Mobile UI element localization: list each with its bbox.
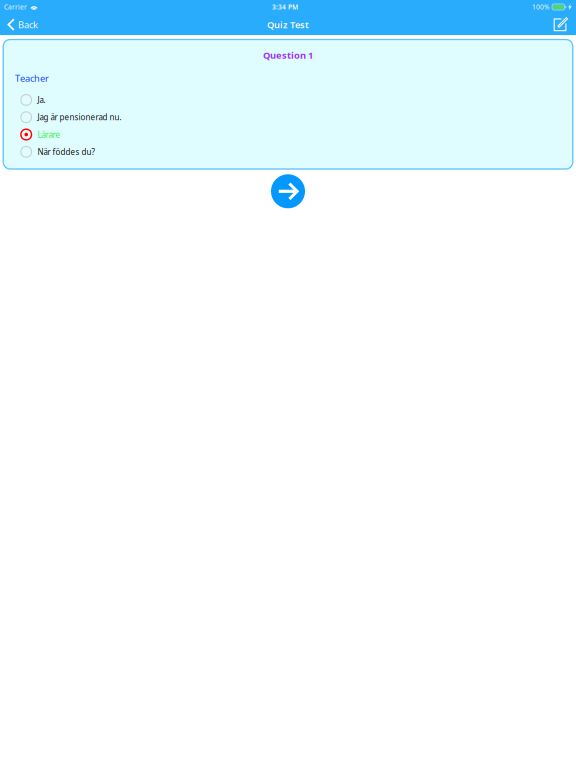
staticText: Question 1 xyxy=(263,49,313,61)
button[interactable]: Back xyxy=(0,14,45,35)
staticText: Lärare xyxy=(37,129,60,140)
button[interactable]: Ja. xyxy=(3,91,573,109)
staticText: Quiz Test xyxy=(267,18,309,31)
button[interactable]: När föddes du? xyxy=(3,143,573,160)
staticText: Jag är pensionerad nu. xyxy=(37,112,121,122)
staticText: 100% xyxy=(532,3,550,11)
button[interactable]: Lärare xyxy=(3,126,573,143)
staticText: När föddes du? xyxy=(37,146,94,157)
staticText: Back xyxy=(18,18,38,31)
button[interactable]: Jag är pensionerad nu. xyxy=(3,109,573,126)
staticText: Ja. xyxy=(37,95,45,105)
staticText: Carrier xyxy=(4,3,27,11)
button[interactable]: Next question xyxy=(266,169,310,213)
staticText: Teacher xyxy=(15,72,49,84)
button[interactable]: Compose xyxy=(546,14,576,35)
staticText: 3:34 PM xyxy=(272,3,298,11)
